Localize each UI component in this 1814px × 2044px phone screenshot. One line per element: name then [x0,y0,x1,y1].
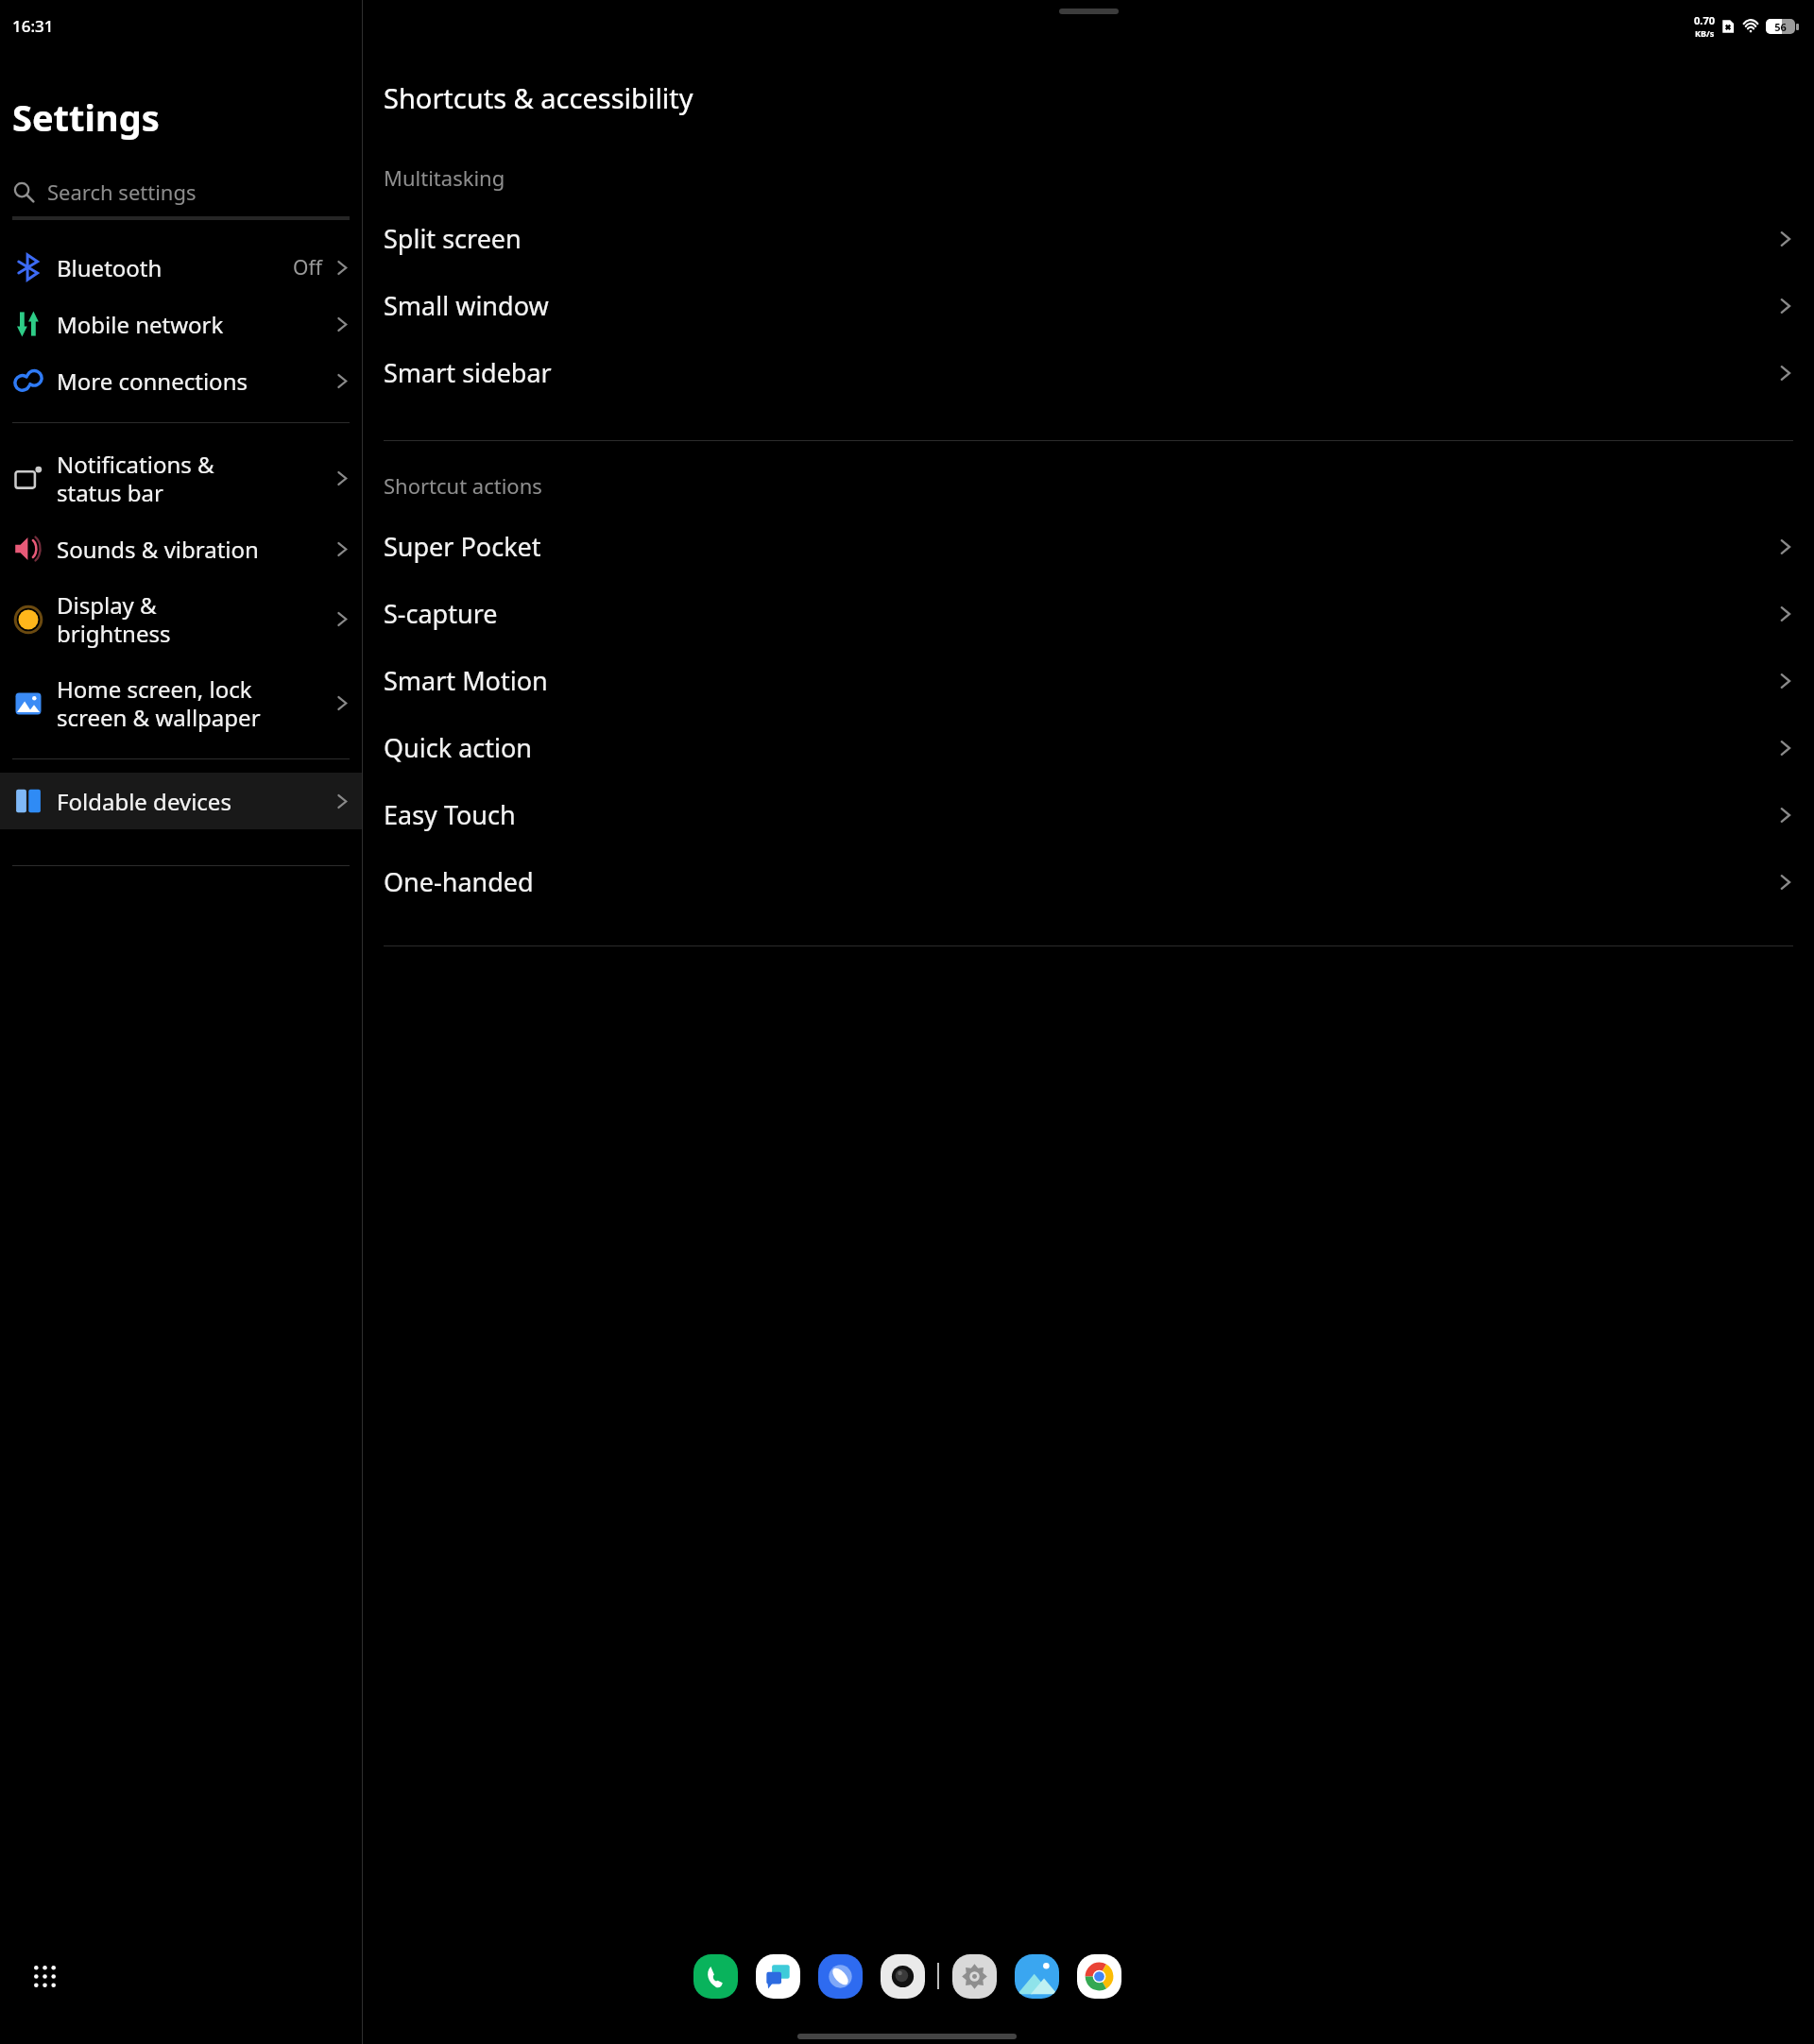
button[interactable]: Quick action [363,714,1814,781]
staticText: Split screen [384,221,1776,256]
button[interactable]: Split screen [363,205,1814,272]
staticText: Mobile network [57,309,334,340]
staticText: Display & brightness [57,589,334,649]
staticText: 16:31 [12,15,54,37]
button[interactable]: Foldable devices [0,773,362,829]
staticText: Easy Touch [384,797,1776,832]
button[interactable]: Sounds & vibration [0,520,362,577]
staticText: 56 [1774,20,1787,34]
staticText: Settings [12,93,160,142]
button[interactable]: Small window [363,272,1814,339]
button[interactable]: Mobile network [0,296,362,352]
button[interactable]: Display & brightness [0,577,362,661]
button[interactable]: Settings [950,1952,998,2000]
staticText: Super Pocket [384,529,1776,564]
staticText: Smart Motion [384,663,1776,698]
staticText: Small window [384,288,1776,323]
button[interactable]: More connections [0,352,362,409]
staticText: Home screen, lock screen & wallpaper [57,673,334,733]
button[interactable]: Chrome [1075,1952,1122,2000]
button[interactable]: Notifications & status bar [0,436,362,520]
button[interactable]: Messages [754,1952,801,2000]
button[interactable]: One-handed [363,848,1814,915]
button[interactable]: Bluetooth [0,239,362,296]
staticText: 0.70 [1694,13,1715,27]
button[interactable]: Smart Motion [363,647,1814,714]
staticText: Search settings [47,178,197,206]
button[interactable]: Easy Touch [363,781,1814,848]
staticText: S-capture [384,596,1776,631]
staticText: Notifications & status bar [57,449,334,508]
button[interactable]: Search settings [12,178,350,220]
staticText: Quick action [384,730,1776,765]
staticText: Off [293,254,322,281]
button[interactable]: Home screen, lock screen & wallpaper [0,661,362,745]
staticText: More connections [57,366,334,397]
staticText: Smart sidebar [384,355,1776,390]
staticText: Shortcut actions [384,471,542,500]
button[interactable]: Smart sidebar [363,339,1814,406]
button[interactable]: Browser [816,1952,864,2000]
staticText: One-handed [384,864,1776,899]
staticText: KB/s [1695,27,1715,39]
button[interactable]: App drawer [23,1954,66,1998]
button[interactable]: Phone [692,1952,739,2000]
button[interactable]: Camera [879,1952,926,2000]
staticText: Shortcuts & accessibility [384,79,693,116]
staticText: Multitasking [384,163,505,192]
staticText: Sounds & vibration [57,534,334,565]
staticText: Foldable devices [57,786,334,817]
button[interactable]: S-capture [363,580,1814,647]
button[interactable]: Super Pocket [363,513,1814,580]
staticText: Bluetooth [57,252,293,283]
button[interactable]: Gallery [1013,1952,1060,2000]
